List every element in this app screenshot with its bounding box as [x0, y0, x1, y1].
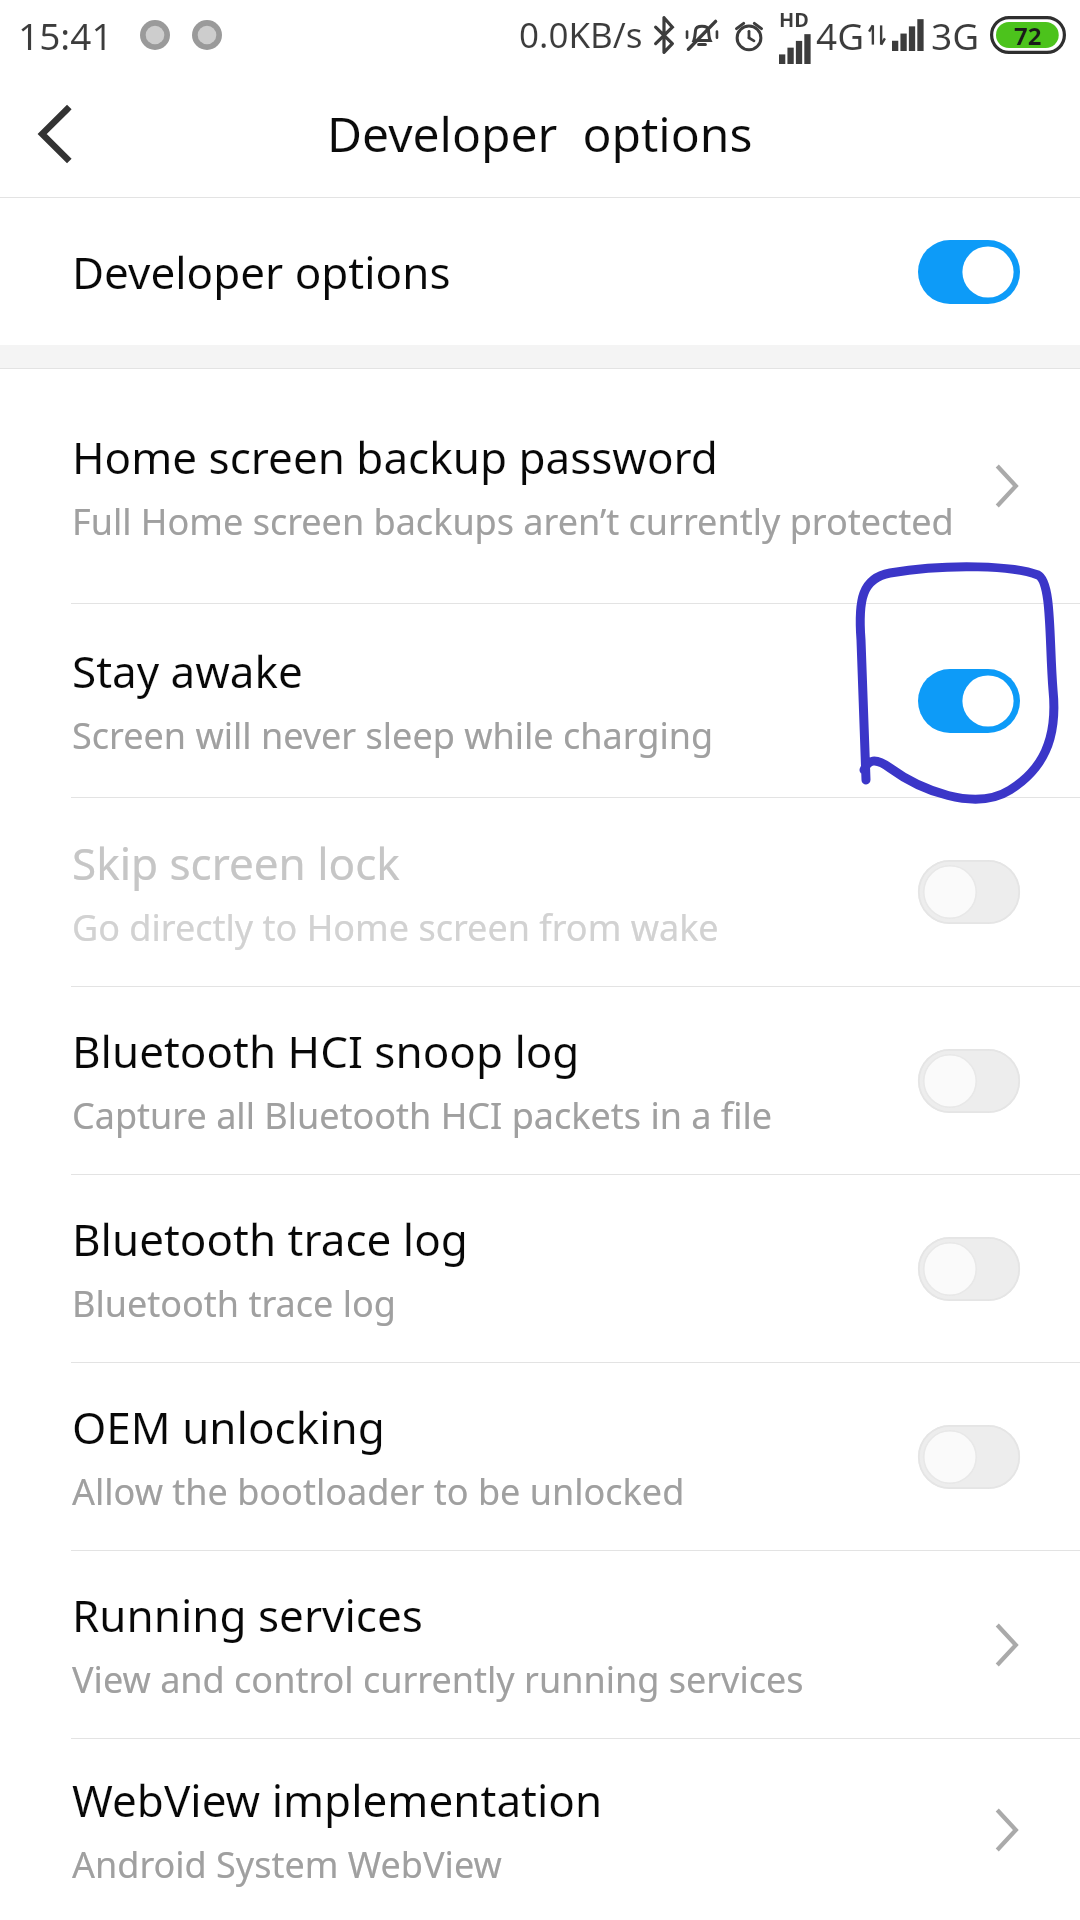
staticText: 3G — [931, 10, 980, 60]
button[interactable]: Bluetooth trace log — [0, 1175, 1080, 1362]
staticText: Stay awake — [72, 641, 303, 701]
staticText: Allow the bootloader to be unlocked — [72, 1467, 685, 1516]
button[interactable]: Home screen backup password — [0, 369, 1080, 603]
staticText: Bluetooth trace log — [72, 1209, 468, 1269]
staticText: Skip screen lock — [72, 833, 400, 893]
button[interactable]: Back — [0, 79, 110, 189]
button[interactable]: OEM unlocking — [0, 1363, 1080, 1550]
staticText: View and control currently running servi… — [72, 1655, 804, 1704]
staticText: Developer options — [327, 101, 753, 166]
staticText: Android System WebView — [72, 1840, 502, 1889]
staticText: Go directly to Home screen from wake — [72, 903, 719, 952]
staticText: WebView implementation — [72, 1770, 603, 1830]
button[interactable]: Developer options — [0, 198, 1080, 345]
staticText: Home screen backup password — [72, 427, 718, 487]
staticText: 15:41 — [18, 10, 113, 60]
staticText: Bluetooth trace log — [72, 1279, 396, 1328]
staticText: Developer options — [72, 242, 451, 302]
staticText: Capture all Bluetooth HCI packets in a f… — [72, 1091, 773, 1140]
button[interactable]: Running services — [0, 1551, 1080, 1738]
button[interactable]: Skip screen lock — [0, 798, 1080, 986]
staticText: 4G — [816, 10, 865, 60]
staticText: Running services — [72, 1585, 423, 1645]
button[interactable]: Bluetooth HCI snoop log — [0, 987, 1080, 1174]
staticText: Full Home screen backups aren’t currentl… — [72, 497, 954, 546]
staticText: Screen will never sleep while charging — [72, 711, 714, 760]
staticText: HD — [779, 6, 809, 33]
staticText: OEM unlocking — [72, 1397, 385, 1457]
staticText: Bluetooth HCI snoop log — [72, 1021, 580, 1081]
button[interactable]: Stay awake — [0, 604, 1080, 797]
staticText: 72 — [1014, 19, 1042, 52]
staticText: 0.0KB/s — [519, 11, 643, 59]
button[interactable]: WebView implementation — [0, 1739, 1080, 1920]
